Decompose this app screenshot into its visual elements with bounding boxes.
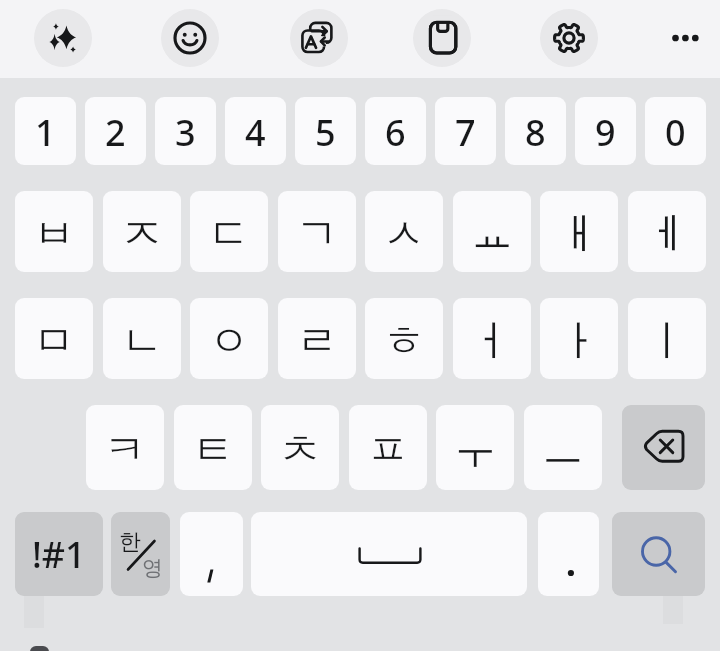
button[interactable]: 5 xyxy=(295,97,356,165)
staticText: ㅂ xyxy=(33,208,75,261)
staticText: 3 xyxy=(175,108,196,157)
button[interactable]: Period xyxy=(538,512,599,596)
staticText: ㅡ xyxy=(542,424,584,477)
button[interactable]: Emoji xyxy=(161,9,219,67)
button[interactable]: !#1 xyxy=(15,512,103,596)
staticText: 8 xyxy=(525,108,546,157)
staticText: ㅐ xyxy=(558,208,600,261)
staticText: 9 xyxy=(595,108,616,157)
staticText: 4 xyxy=(245,108,266,157)
button[interactable]: 6 xyxy=(365,97,426,165)
button[interactable]: ㄹ xyxy=(278,298,356,379)
staticText: ㅎ xyxy=(383,315,425,368)
staticText: 영 xyxy=(142,555,163,581)
button[interactable]: ㄷ xyxy=(190,191,268,272)
staticText: ㅓ xyxy=(471,315,513,368)
button[interactable]: ㅋ xyxy=(86,405,164,490)
button[interactable]: ㄱ xyxy=(278,191,356,272)
staticText: ㅣ xyxy=(646,315,688,368)
button[interactable]: 4 xyxy=(225,97,286,165)
button[interactable]: ㅜ xyxy=(436,405,514,490)
button[interactable]: ㅅ xyxy=(365,191,443,272)
staticText: 0 xyxy=(665,108,686,157)
button[interactable]: ㅛ xyxy=(453,191,531,272)
staticText: ㄹ xyxy=(296,315,338,368)
button[interactable]: 8 xyxy=(505,97,566,165)
staticText: 2 xyxy=(105,108,126,157)
staticText: ㅌ xyxy=(192,424,234,477)
staticText: ㅔ xyxy=(646,208,688,261)
button[interactable]: ㅊ xyxy=(261,405,339,490)
button[interactable]: ㅈ xyxy=(103,191,181,272)
staticText: ㅍ xyxy=(367,424,409,477)
button[interactable]: 0 xyxy=(645,97,706,165)
button[interactable]: ㅣ xyxy=(628,298,706,379)
button[interactable]: ㄴ xyxy=(103,298,181,379)
staticText: ㅅ xyxy=(383,208,425,261)
staticText: ㄷ xyxy=(208,208,250,261)
button[interactable]: ㅂ xyxy=(15,191,93,272)
button[interactable]: Search xyxy=(612,512,705,596)
staticText: 6 xyxy=(385,108,406,157)
button[interactable]: Space xyxy=(251,512,527,596)
staticText: 7 xyxy=(455,108,476,157)
button[interactable]: ㅡ xyxy=(524,405,602,490)
staticText: ㅈ xyxy=(121,208,163,261)
button[interactable]: 1 xyxy=(15,97,76,165)
button[interactable]: 9 xyxy=(575,97,636,165)
button[interactable]: ㅎ xyxy=(365,298,443,379)
button[interactable]: 7 xyxy=(435,97,496,165)
button[interactable]: Clipboard xyxy=(413,9,471,67)
button[interactable]: ㅍ xyxy=(349,405,427,490)
button[interactable]: Backspace xyxy=(622,405,705,490)
staticText: ㅇ xyxy=(208,315,250,368)
staticText: ㅊ xyxy=(279,424,321,477)
button[interactable]: ㅔ xyxy=(628,191,706,272)
staticText: ㅁ xyxy=(33,315,75,368)
staticText: 5 xyxy=(315,108,336,157)
staticText: ㄴ xyxy=(121,315,163,368)
button[interactable]: Comma xyxy=(180,512,243,596)
button[interactable]: Translate xyxy=(290,9,348,67)
staticText: !#1 xyxy=(32,530,86,579)
staticText: ㄱ xyxy=(296,208,338,261)
staticText: ㅛ xyxy=(471,208,513,261)
staticText: 1 xyxy=(35,108,56,157)
button[interactable]: ㅇ xyxy=(190,298,268,379)
staticText: ㅋ xyxy=(104,424,146,477)
staticText: 한 xyxy=(119,528,141,556)
button[interactable]: More options xyxy=(656,9,714,67)
button[interactable]: ㅓ xyxy=(453,298,531,379)
button[interactable]: 3 xyxy=(155,97,216,165)
button[interactable]: Writing assist xyxy=(34,9,92,67)
staticText: ㅏ xyxy=(558,315,600,368)
button[interactable]: Settings xyxy=(540,9,598,67)
button[interactable]: Korean English toggle xyxy=(111,512,170,596)
button[interactable]: ㅐ xyxy=(540,191,618,272)
button[interactable]: 2 xyxy=(85,97,146,165)
staticText: ㅜ xyxy=(454,424,496,477)
button[interactable]: ㅁ xyxy=(15,298,93,379)
button[interactable]: ㅏ xyxy=(540,298,618,379)
button[interactable]: ㅌ xyxy=(174,405,252,490)
